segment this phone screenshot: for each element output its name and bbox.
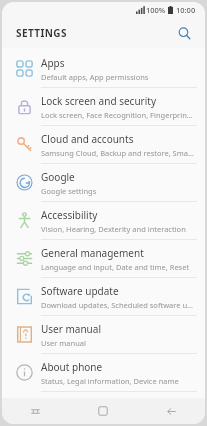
staticText: SETTINGS	[16, 26, 67, 40]
staticText: 10:00	[176, 5, 196, 15]
staticText: General management	[41, 246, 144, 260]
staticText: Status, Legal information, Device name	[41, 376, 179, 386]
staticText: Apps	[41, 56, 65, 70]
button[interactable]: Search	[173, 22, 195, 44]
staticText: Lock screen and security	[41, 94, 156, 108]
staticText: Download updates, Scheduled software up.…	[41, 300, 195, 310]
button[interactable]: Accessibility	[2, 202, 205, 239]
staticText: About phone	[41, 360, 103, 374]
button[interactable]: Lock screen and security	[2, 88, 205, 125]
staticText: User manual	[41, 338, 86, 348]
staticText: 100%	[146, 5, 166, 15]
button[interactable]: Apps	[2, 50, 205, 87]
staticText: Google	[41, 170, 75, 184]
button[interactable]: Back	[137, 398, 205, 424]
staticText: Samsung Cloud, Backup and restore, Smart…	[41, 148, 195, 158]
button[interactable]: General management	[2, 240, 205, 277]
button[interactable]: About phone	[2, 354, 205, 391]
staticText: Default apps, App permissions	[41, 72, 149, 82]
button[interactable]: Recent apps	[2, 398, 69, 424]
button[interactable]: Cloud and accounts	[2, 126, 205, 163]
staticText: User manual	[41, 322, 101, 336]
button[interactable]: Home	[69, 398, 137, 424]
button[interactable]: Google	[2, 164, 205, 201]
staticText: Language and input, Date and time, Reset	[41, 262, 190, 272]
staticText: Google settings	[41, 186, 97, 196]
staticText: Cloud and accounts	[41, 132, 134, 146]
button[interactable]: Software update	[2, 278, 205, 315]
staticText: Accessibility	[41, 208, 98, 222]
staticText: Vision, Hearing, Dexterity and interacti…	[41, 224, 186, 234]
button[interactable]: User manual	[2, 316, 205, 353]
staticText: Lock screen, Face Recognition, Fingerpri…	[41, 110, 195, 120]
staticText: Software update	[41, 284, 119, 298]
